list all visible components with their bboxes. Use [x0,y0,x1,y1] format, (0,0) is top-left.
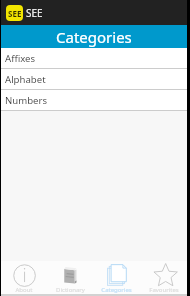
button[interactable]: Favourites [140,261,187,294]
staticText: About [15,286,33,294]
button[interactable]: Dictionary [47,261,93,294]
staticText: Dictionary [56,286,85,294]
staticText: SEE [26,6,43,20]
button[interactable]: SEE [1,0,187,25]
staticText: Favourites [149,286,179,294]
button[interactable]: Affixes [1,48,187,68]
staticText: Categories [101,286,132,294]
button[interactable]: Numbers [1,90,187,110]
staticText: Alphabet [5,73,46,86]
staticText: Affixes [5,52,36,65]
button[interactable]: Alphabet [1,69,187,89]
staticText: SEE [8,8,22,19]
button[interactable]: About [1,261,47,294]
staticText: Categories [56,27,132,47]
button[interactable]: Categories [93,261,140,294]
staticText: Numbers [5,94,48,107]
